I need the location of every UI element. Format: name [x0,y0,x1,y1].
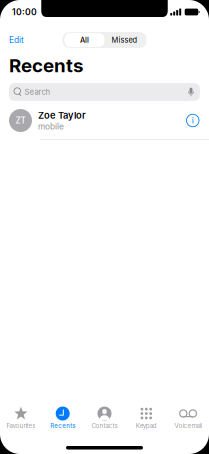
staticText: All [80,35,89,44]
staticText: ZT [15,115,25,125]
button[interactable]: Contacts [84,404,125,432]
button[interactable]: Voicemail [167,404,209,432]
staticText: Search [25,87,51,97]
button[interactable]: All [64,33,104,47]
staticText: Voicemail [175,422,202,429]
staticText: Recents [50,422,75,429]
staticText: Contacts [91,422,117,429]
staticText: Edit [9,35,24,45]
button[interactable]: Recents [42,404,84,432]
staticText: Keypad [136,422,157,429]
button[interactable]: Call details [186,114,199,127]
staticText: 10:00 [12,7,37,17]
button[interactable]: Favourites [0,404,42,432]
button[interactable]: Keypad [125,404,167,432]
staticText: Favourites [6,422,35,429]
staticText: i [192,115,194,126]
staticText: Missed [111,35,137,44]
button[interactable]: Missed [104,33,144,47]
staticText: mobile [38,121,64,131]
button[interactable]: Search [9,83,200,101]
staticText: Recents [9,54,83,77]
button[interactable]: Edit [0,30,32,50]
staticText: Zoe Taylor [38,110,86,121]
